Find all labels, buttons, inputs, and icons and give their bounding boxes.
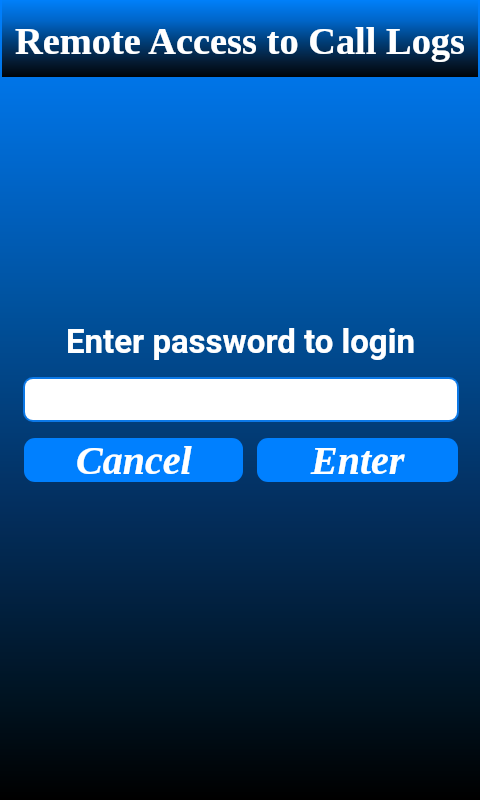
- button[interactable]: Enter: [257, 438, 458, 482]
- staticText: Enter password to login: [66, 322, 415, 361]
- staticText: Enter: [311, 438, 405, 482]
- button[interactable]: Cancel: [24, 438, 243, 482]
- staticText: Cancel: [76, 438, 192, 482]
- button[interactable]: Password field: [25, 379, 457, 420]
- staticText: Remote Access to Call Logs: [15, 20, 465, 63]
